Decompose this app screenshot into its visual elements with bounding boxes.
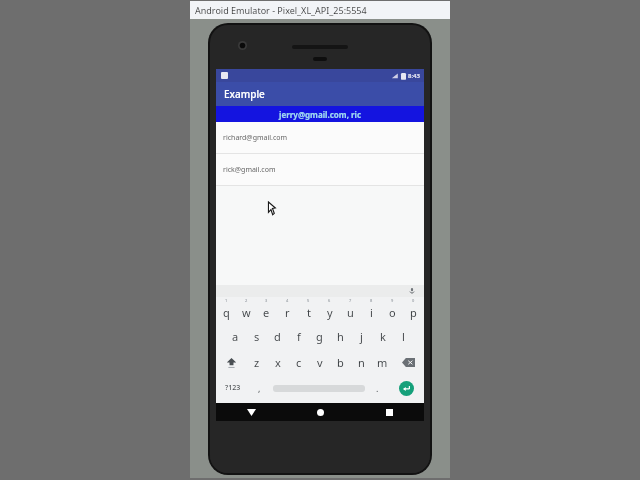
staticText: p	[410, 305, 417, 320]
staticText: t	[307, 305, 311, 320]
staticText: rick@gmail.com	[223, 165, 276, 175]
staticText: .	[376, 382, 379, 394]
staticText: 8	[370, 298, 373, 303]
staticText: Example	[224, 87, 265, 101]
staticText: v	[317, 355, 323, 370]
staticText: k	[380, 329, 386, 344]
staticText: f	[297, 329, 301, 344]
button[interactable]: m	[372, 349, 393, 375]
button[interactable]: h	[330, 323, 351, 349]
button[interactable]: 6	[319, 297, 340, 323]
staticText: a	[232, 329, 239, 344]
staticText: j	[360, 329, 363, 344]
button[interactable]: 8	[361, 297, 382, 323]
staticText: 4	[286, 298, 289, 303]
staticText: m	[377, 355, 388, 370]
staticText: w	[242, 305, 251, 320]
staticText: 6	[328, 298, 331, 303]
button[interactable]: Shift	[216, 349, 246, 375]
staticText: 0	[412, 298, 415, 303]
button[interactable]: f	[288, 323, 309, 349]
staticText: g	[316, 329, 323, 344]
staticText: l	[402, 329, 405, 344]
staticText: 3	[265, 298, 268, 303]
button[interactable]: Backspace	[393, 349, 424, 375]
staticText: ?123	[225, 383, 241, 393]
button[interactable]: a	[225, 323, 246, 349]
button[interactable]: Enter	[388, 375, 424, 401]
button[interactable]: ?123	[216, 375, 249, 401]
button[interactable]: 1	[216, 297, 236, 323]
staticText: o	[389, 305, 396, 320]
staticText: d	[274, 329, 281, 344]
button[interactable]: Home	[286, 403, 355, 421]
button[interactable]: b	[330, 349, 351, 375]
staticText: 8:43	[408, 72, 420, 80]
button[interactable]: z	[246, 349, 267, 375]
staticText: 7	[349, 298, 352, 303]
staticText: 9	[391, 298, 394, 303]
button[interactable]: d	[267, 323, 288, 349]
button[interactable]: richard@gmail.com	[216, 122, 424, 153]
staticText: x	[275, 355, 281, 370]
staticText: h	[337, 329, 344, 344]
button[interactable]: 3	[256, 297, 277, 323]
button[interactable]: s	[246, 323, 267, 349]
button[interactable]: l	[393, 323, 414, 349]
button[interactable]: 0	[403, 297, 424, 323]
button[interactable]: Hide keyboard	[216, 403, 286, 421]
staticText: 1	[225, 298, 228, 303]
staticText: jerry@gmail.com, ric	[279, 109, 362, 120]
button[interactable]: c	[288, 349, 309, 375]
button[interactable]: n	[351, 349, 372, 375]
button[interactable]: rick@gmail.com	[216, 154, 424, 185]
button[interactable]: Space	[270, 375, 367, 401]
staticText: u	[347, 305, 354, 320]
button[interactable]: Recents	[355, 403, 424, 421]
button[interactable]: jerry@gmail.com, ric	[216, 106, 424, 122]
button[interactable]: j	[351, 323, 372, 349]
button[interactable]: 9	[382, 297, 403, 323]
button[interactable]: 5	[298, 297, 319, 323]
staticText: z	[254, 355, 260, 370]
staticText: q	[223, 305, 230, 320]
staticText: y	[327, 305, 333, 320]
button[interactable]: Voice input	[406, 285, 418, 297]
button[interactable]: .	[367, 375, 388, 401]
button[interactable]: ,	[249, 375, 270, 401]
staticText: c	[296, 355, 302, 370]
staticText: 2	[245, 298, 248, 303]
button[interactable]: g	[309, 323, 330, 349]
staticText: 5	[307, 298, 310, 303]
button[interactable]: v	[309, 349, 330, 375]
staticText: n	[358, 355, 365, 370]
button[interactable]: 4	[277, 297, 298, 323]
button[interactable]: 2	[236, 297, 256, 323]
button[interactable]: 7	[340, 297, 361, 323]
button[interactable]: x	[267, 349, 288, 375]
staticText: i	[370, 305, 373, 320]
staticText: b	[337, 355, 344, 370]
staticText: richard@gmail.com	[223, 133, 288, 143]
staticText: e	[263, 305, 270, 320]
staticText: s	[254, 329, 260, 344]
staticText: r	[285, 305, 290, 320]
staticText: Android Emulator - Pixel_XL_API_25:5554	[195, 4, 367, 16]
staticText: ,	[258, 382, 261, 394]
button[interactable]: k	[372, 323, 393, 349]
